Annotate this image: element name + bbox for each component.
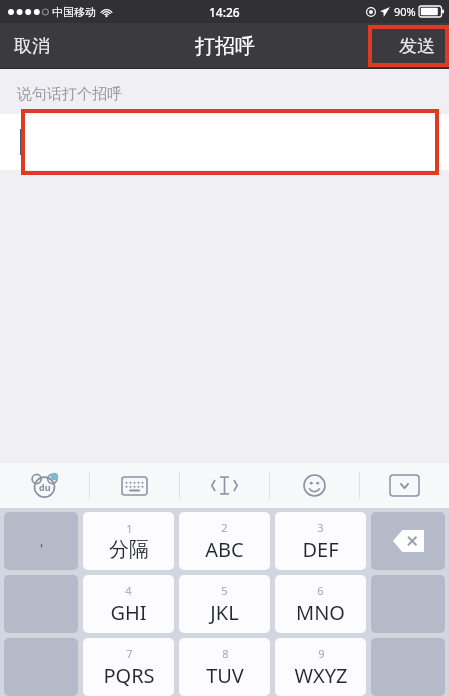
staticText: 4: [125, 583, 132, 598]
staticText: 取消: [14, 35, 50, 58]
staticText: MNO: [296, 599, 345, 626]
staticText: 中国移动: [52, 5, 96, 19]
staticText: 6: [317, 583, 324, 598]
button[interactable]: 6: [275, 575, 366, 633]
button[interactable]: Hide keyboard: [360, 463, 449, 508]
staticText: JKL: [210, 599, 239, 626]
button[interactable]: 5: [179, 575, 270, 633]
staticText: 发送: [399, 35, 435, 58]
staticText: 90%: [394, 4, 416, 19]
button[interactable]: Backspace: [371, 512, 445, 570]
button[interactable]: 4: [83, 575, 174, 633]
staticText: 3: [317, 520, 324, 535]
staticText: DEF: [302, 536, 339, 563]
staticText: du: [39, 481, 51, 493]
button[interactable]: ，: [4, 512, 78, 570]
staticText: 7: [126, 646, 133, 661]
button[interactable]: 3: [275, 512, 366, 570]
staticText: 分隔: [109, 537, 149, 562]
button[interactable]: Baidu input method: [0, 463, 89, 508]
button[interactable]: Move cursor: [180, 463, 269, 508]
staticText: ABC: [205, 536, 244, 563]
button[interactable]: 取消: [0, 23, 64, 69]
staticText: 2: [221, 520, 228, 535]
button[interactable]: 2: [179, 512, 270, 570]
staticText: 打招呼: [195, 34, 255, 59]
staticText: 5: [221, 583, 228, 598]
button[interactable]: 1: [83, 512, 174, 570]
staticText: WXYZ: [294, 662, 348, 689]
staticText: 8: [222, 646, 229, 661]
button[interactable]: 9: [275, 638, 366, 696]
button[interactable]: 7: [83, 638, 174, 696]
staticText: 9: [318, 646, 325, 661]
staticText: ，: [35, 533, 48, 549]
staticText: GHI: [110, 599, 147, 626]
staticText: TUV: [206, 662, 244, 689]
button[interactable]: 发送: [385, 23, 449, 69]
staticText: PQRS: [103, 662, 155, 689]
staticText: 1: [126, 521, 133, 536]
button[interactable]: Emoji: [270, 463, 359, 508]
staticText: 14:26: [209, 4, 240, 20]
button[interactable]: [0, 114, 449, 170]
staticText: 说句话打个招呼: [17, 85, 122, 104]
button[interactable]: 8: [179, 638, 270, 696]
button[interactable]: Keyboard layout: [90, 463, 179, 508]
